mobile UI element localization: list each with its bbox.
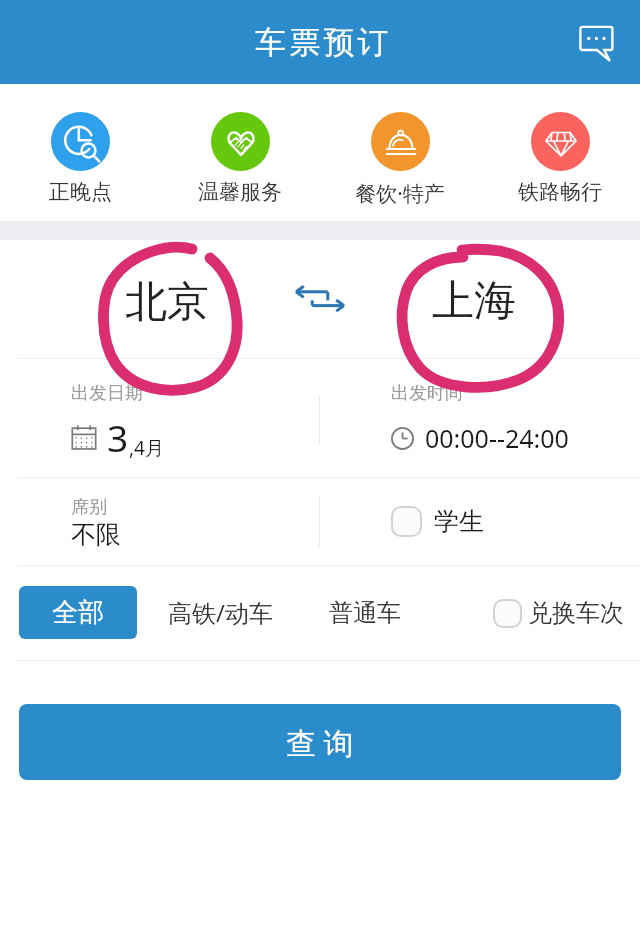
staticText: 不限 (71, 519, 121, 550)
button[interactable]: 普通车 (325, 586, 404, 639)
staticText: 全部 (52, 596, 104, 629)
button[interactable]: 温馨服务 (160, 84, 320, 221)
button[interactable]: 上海 (364, 240, 584, 358)
staticText: 北京 (125, 276, 209, 329)
staticText: 正晚点 (49, 179, 112, 205)
staticText: 上海 (432, 275, 516, 328)
button[interactable]: 席别 (0, 478, 319, 565)
staticText: 3 (107, 412, 129, 462)
staticText: 出发日期 (71, 382, 143, 405)
staticText: 查 询 (286, 722, 354, 763)
button[interactable]: 高铁/动车 (164, 586, 276, 639)
button[interactable]: Swap origin and destination (288, 240, 352, 358)
staticText: 00:00--24:00 (425, 421, 569, 455)
button[interactable]: 查 询 (19, 704, 621, 780)
staticText: 普通车 (329, 598, 401, 628)
button[interactable]: 全部 (19, 586, 137, 639)
button[interactable]: 兑换车次 (494, 598, 624, 628)
staticText: 兑换车次 (528, 598, 624, 628)
button[interactable]: Messages (578, 22, 618, 62)
button[interactable]: 铁路畅行 (480, 84, 640, 221)
staticText: 温馨服务 (198, 179, 282, 205)
staticText: 学生 (434, 506, 484, 537)
staticText: 铁路畅行 (518, 179, 602, 205)
button[interactable]: 餐饮·特产 (320, 84, 480, 221)
staticText: 餐饮·特产 (355, 179, 445, 208)
button[interactable]: 北京 (57, 240, 277, 358)
button[interactable]: 学生 (392, 506, 484, 537)
button[interactable]: 正晚点 (0, 84, 160, 221)
staticText: 车票预订 (255, 23, 392, 62)
staticText: 高铁/动车 (168, 596, 273, 629)
button[interactable]: 出发时间 (320, 359, 640, 477)
staticText: 出发时间 (391, 382, 463, 405)
staticText: ,4月 (129, 435, 164, 461)
staticText: 席别 (71, 496, 107, 519)
button[interactable]: 出发日期 (0, 359, 319, 477)
